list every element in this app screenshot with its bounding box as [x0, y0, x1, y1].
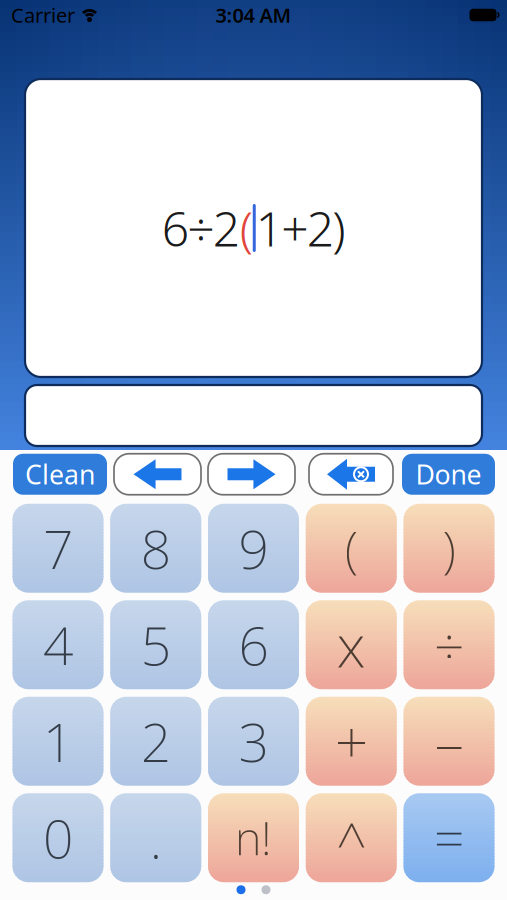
button[interactable]: x	[306, 600, 397, 689]
button[interactable]: 4	[12, 600, 103, 689]
button[interactable]: (	[306, 504, 397, 593]
staticText: 0	[43, 802, 73, 873]
button[interactable]: 6	[208, 600, 299, 689]
staticText: 6	[238, 609, 268, 680]
staticText: Clean	[25, 456, 95, 492]
button[interactable]: 7	[12, 504, 103, 593]
staticText: 1+2)	[256, 196, 345, 260]
staticText: (	[345, 515, 358, 582]
button[interactable]: Move cursor left	[114, 454, 201, 495]
button[interactable]: Clean	[13, 454, 107, 495]
staticText: ^	[336, 806, 366, 877]
button[interactable]: ^	[306, 793, 397, 882]
button[interactable]: Done	[402, 454, 495, 495]
button[interactable]: +	[306, 697, 397, 786]
staticText: x	[337, 606, 366, 684]
button[interactable]: ÷	[403, 600, 494, 689]
staticText: ÷	[434, 609, 464, 680]
button[interactable]: 0	[12, 793, 103, 882]
staticText: Carrier	[11, 2, 75, 28]
staticText: 9	[238, 513, 268, 584]
staticText: 1	[43, 706, 73, 777]
button[interactable]: =	[403, 793, 494, 882]
staticText: 4	[43, 609, 73, 680]
staticText: 8	[141, 513, 171, 584]
button[interactable]: 5	[110, 600, 201, 689]
staticText: )	[442, 515, 455, 582]
button[interactable]: .	[110, 793, 201, 882]
staticText: 5	[141, 609, 171, 680]
staticText: 3	[238, 706, 268, 777]
button[interactable]: –	[403, 697, 494, 786]
button[interactable]: 3	[208, 697, 299, 786]
staticText: Done	[415, 456, 481, 492]
button[interactable]: Delete	[309, 454, 393, 495]
staticText: n!	[235, 808, 272, 868]
staticText: 3:04 AM	[215, 2, 291, 28]
staticText: –	[434, 702, 463, 780]
button[interactable]: Move cursor right	[208, 454, 295, 495]
staticText: +	[335, 702, 368, 780]
staticText: 2	[141, 706, 171, 777]
staticText: =	[434, 802, 464, 873]
staticText: 6÷2	[162, 196, 240, 260]
button[interactable]: 1	[12, 697, 103, 786]
staticText: 7	[43, 513, 73, 584]
staticText: .	[150, 802, 162, 873]
button[interactable]: n!	[208, 793, 299, 882]
button[interactable]: 9	[208, 504, 299, 593]
button[interactable]: 2	[110, 697, 201, 786]
staticText: (	[240, 196, 253, 260]
button[interactable]: )	[403, 504, 494, 593]
button[interactable]: 8	[110, 504, 201, 593]
